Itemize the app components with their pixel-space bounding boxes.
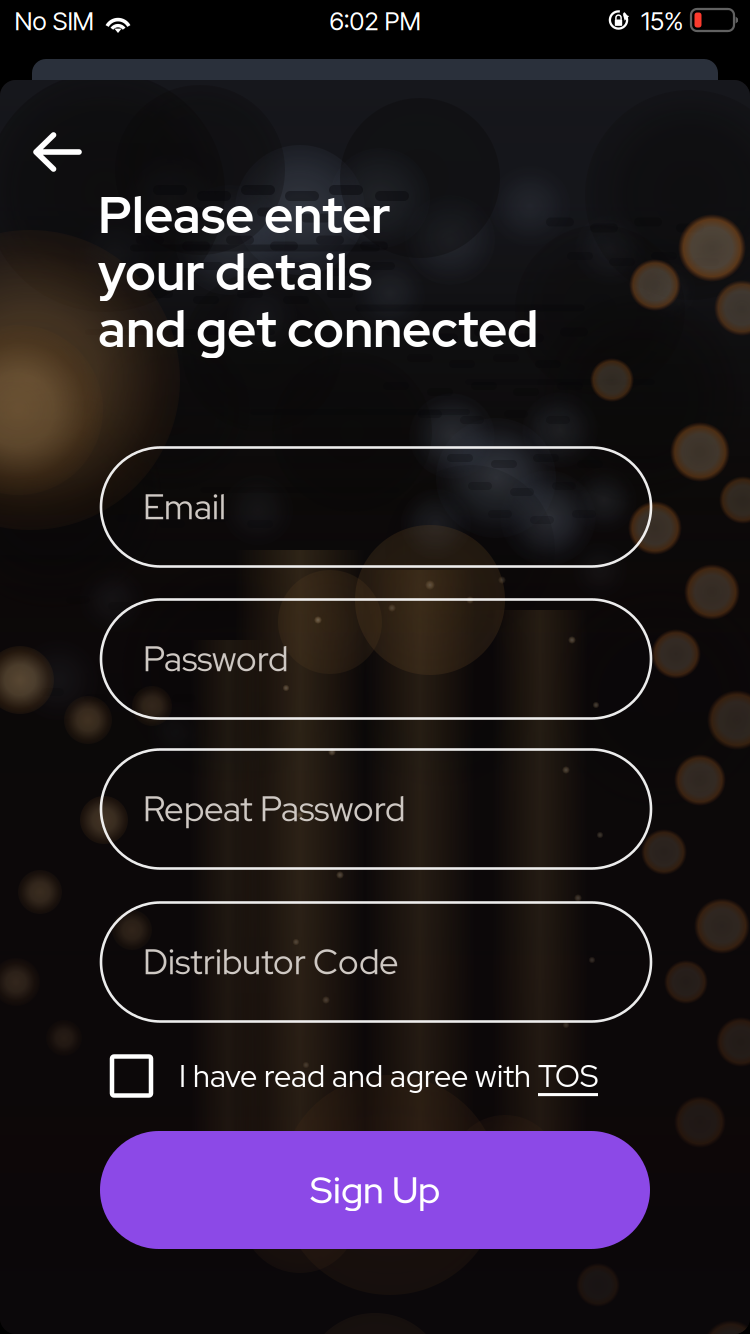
- button[interactable]: Distributor Code: [101, 902, 651, 1021]
- staticText: Please enter your details and get connec…: [98, 181, 538, 363]
- button[interactable]: Sign Up: [100, 1131, 650, 1249]
- staticText: Password: [143, 636, 288, 682]
- button[interactable]: I have read and agree with: [112, 1048, 672, 1104]
- staticText: Distributor Code: [143, 939, 399, 985]
- staticText: Sign Up: [310, 1165, 440, 1215]
- staticText: Repeat Password: [143, 786, 405, 832]
- staticText: 6:02 PM: [329, 6, 420, 36]
- staticText: Email: [143, 484, 226, 530]
- button[interactable]: Password: [101, 599, 651, 718]
- staticText: 15%: [641, 6, 683, 36]
- staticText: No SIM: [14, 6, 93, 36]
- staticText: TOS: [538, 1056, 598, 1096]
- button[interactable]: Back: [18, 118, 96, 186]
- button[interactable]: Repeat Password: [101, 749, 651, 868]
- button[interactable]: Email: [101, 447, 651, 566]
- staticText: I have read and agree with: [179, 1056, 538, 1096]
